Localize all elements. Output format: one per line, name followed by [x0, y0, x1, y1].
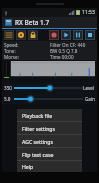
staticText: Speed: — [4, 42, 19, 48]
button[interactable]: Stop — [85, 30, 95, 40]
staticText: BW 0.5 Q 7.8 — [50, 48, 78, 54]
staticText: Playback file — [22, 112, 53, 119]
staticText: Gain — [85, 96, 95, 102]
staticText: Time 00:00 — [50, 54, 74, 60]
staticText: Help — [22, 163, 34, 170]
staticText: Filter settings — [22, 125, 56, 132]
button[interactable]: Help — [17, 161, 82, 172]
button[interactable]: Play — [61, 30, 71, 40]
staticText: 5.0 — [4, 96, 11, 102]
staticText: Flip text case — [22, 151, 54, 158]
staticText: Level — [83, 85, 95, 91]
staticText: Tone: — [4, 48, 16, 54]
staticText: AGC settings — [22, 138, 53, 145]
button[interactable]: Playback file — [17, 109, 82, 121]
staticText: RX Beta 1.7 — [15, 18, 50, 27]
staticText: Filter On CF: 440 — [50, 42, 86, 48]
button[interactable]: RX Beta 1.7 — [2, 17, 97, 28]
button[interactable]: Record — [49, 30, 59, 40]
button[interactable]: Lock — [28, 30, 38, 40]
button[interactable]: 350 — [2, 82, 97, 93]
staticText: 350 — [4, 85, 12, 91]
button[interactable]: Equalizer — [4, 30, 14, 40]
button[interactable]: AGC settings — [17, 135, 82, 147]
button[interactable]: Tune — [16, 30, 26, 40]
button[interactable]: Pause — [73, 30, 83, 40]
button[interactable]: 5.0 — [2, 93, 97, 104]
button[interactable]: Flip text case — [17, 148, 82, 160]
staticText: 11:53 — [82, 9, 95, 16]
button[interactable]: Filter settings — [17, 122, 82, 134]
staticText: Morse: — [4, 54, 19, 60]
